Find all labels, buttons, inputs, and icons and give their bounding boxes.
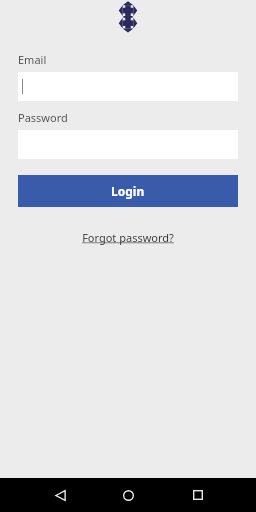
button[interactable] <box>18 72 238 101</box>
staticText: Login <box>111 183 145 199</box>
button[interactable]: Forgot password? <box>76 227 180 248</box>
staticText: Password <box>18 110 68 125</box>
staticText: Forgot password? <box>82 230 174 245</box>
button[interactable]: Login <box>18 175 238 207</box>
button[interactable]: Recents <box>184 481 212 509</box>
button[interactable]: Back <box>46 481 74 509</box>
staticText: Email <box>18 52 47 67</box>
button[interactable]: Home <box>114 481 142 509</box>
